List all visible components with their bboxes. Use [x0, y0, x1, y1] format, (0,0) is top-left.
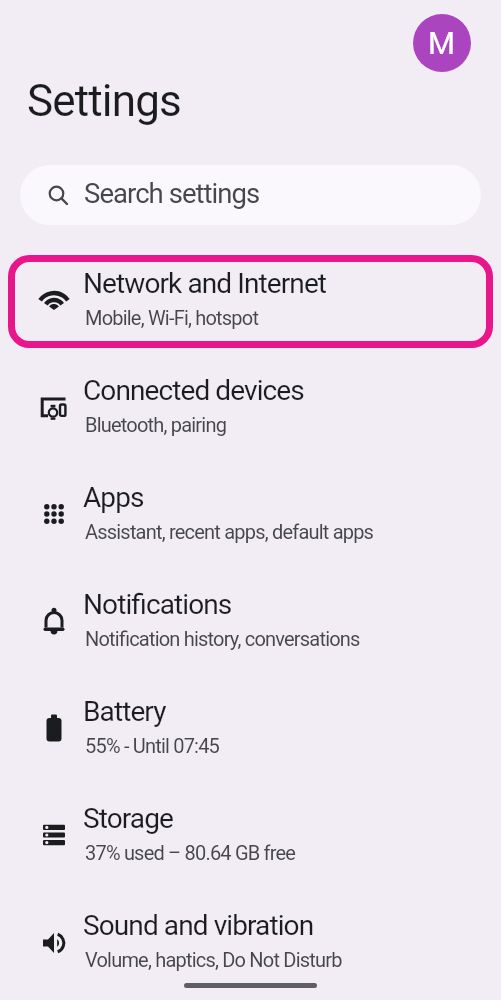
button[interactable]: Apps — [0, 461, 501, 568]
staticText: Search settings — [84, 177, 260, 209]
staticText: M — [428, 25, 456, 61]
staticText: 37% used – 80.64 GB free — [85, 841, 296, 864]
staticText: Storage — [83, 802, 173, 835]
staticText: Notification history, conversations — [85, 627, 360, 650]
staticText: Mobile, Wi-Fi, hotspot — [85, 306, 259, 329]
button[interactable]: Network and Internet — [0, 247, 501, 354]
button[interactable]: Battery — [0, 675, 501, 782]
staticText: 55% - Until 07:45 — [85, 734, 220, 757]
staticText: Sound and vibration — [83, 909, 314, 942]
staticText: Connected devices — [83, 374, 304, 407]
staticText: Battery — [83, 695, 166, 728]
staticText: Volume, haptics, Do Not Disturb — [85, 948, 342, 971]
button[interactable]: Sound and vibration — [0, 889, 501, 996]
staticText: Settings — [27, 75, 181, 127]
button[interactable]: M — [413, 14, 471, 72]
staticText: Bluetooth, pairing — [85, 413, 227, 436]
staticText: Apps — [83, 481, 144, 514]
button[interactable]: Notifications — [0, 568, 501, 675]
button[interactable]: Storage — [0, 782, 501, 889]
staticText: Network and Internet — [83, 267, 327, 300]
button[interactable]: Search settings — [20, 165, 481, 225]
staticText: Notifications — [83, 588, 232, 621]
button[interactable]: Connected devices — [0, 354, 501, 461]
staticText: Assistant, recent apps, default apps — [85, 520, 374, 543]
